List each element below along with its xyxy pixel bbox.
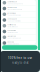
button[interactable]: Samantha Lee: [1, 0, 36, 5]
staticText: Let's catch up soon: [7, 37, 21, 39]
staticText: New pick this week: [7, 43, 19, 45]
button[interactable]: Book Club: [1, 40, 36, 46]
button[interactable]: [2, 45, 37, 50]
staticText: Can you review this?: [7, 20, 21, 22]
staticText: Design Team: [7, 7, 16, 8]
staticText: Mark: shipped update: [7, 9, 22, 10]
staticText: Chris Nguyen: [7, 18, 17, 20]
staticText: ready to chat: [11, 61, 28, 64]
staticText: On my way now: [7, 32, 17, 33]
staticText: Alex Morgan: [7, 35, 16, 37]
button[interactable]: Priya Raman: [1, 29, 36, 34]
staticText: Jordan Blake: [7, 12, 16, 14]
staticText: Mum: call me back: [7, 26, 18, 28]
button[interactable]: Alex Morgan: [1, 34, 36, 40]
staticText: Family Group: [7, 24, 16, 26]
staticText: Samantha Lee: [7, 1, 17, 3]
button[interactable]: Jordan Blake: [1, 11, 36, 17]
staticText: Book Club: [7, 41, 14, 43]
staticText: Sounds good, see you: [7, 3, 23, 5]
button[interactable]: Family Group: [1, 23, 36, 28]
staticText: 100% free to use: [7, 56, 32, 60]
staticText: Priya Raman: [7, 30, 16, 31]
staticText: Thanks for the help!: [7, 14, 20, 16]
button[interactable]: Design Team: [1, 6, 36, 11]
button[interactable]: Chris Nguyen: [1, 17, 36, 23]
